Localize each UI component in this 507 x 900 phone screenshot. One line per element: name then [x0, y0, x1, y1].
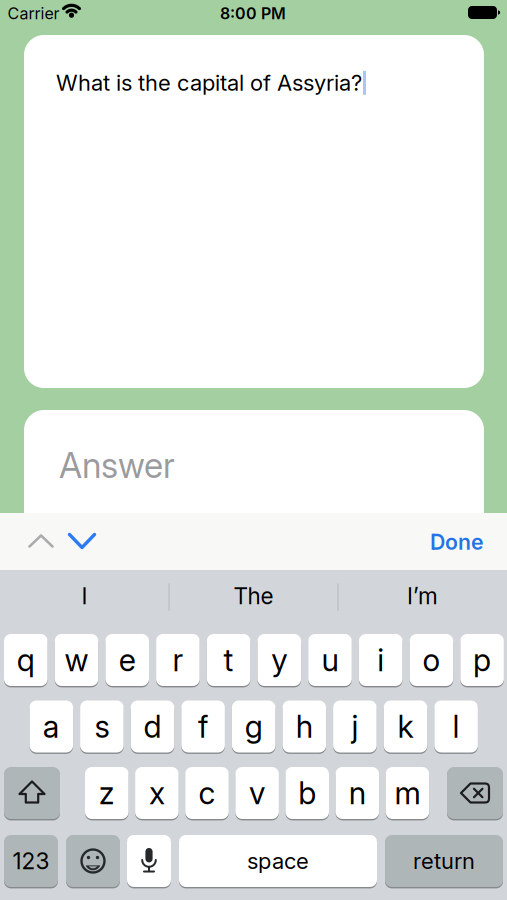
button[interactable]: a — [29, 700, 73, 752]
button[interactable]: Emoji — [66, 835, 120, 887]
button[interactable]: 123 — [4, 835, 58, 887]
button[interactable]: b — [285, 767, 329, 819]
button[interactable]: w — [55, 634, 98, 686]
staticText: Done — [430, 529, 484, 555]
staticText: m — [394, 774, 420, 811]
button[interactable]: d — [131, 700, 174, 752]
button[interactable]: g — [232, 700, 275, 752]
staticText: p — [473, 641, 491, 678]
staticText: i — [377, 641, 384, 678]
staticText: I — [81, 582, 87, 610]
button[interactable]: c — [185, 767, 229, 819]
button[interactable]: h — [282, 700, 326, 752]
staticText: j — [351, 708, 358, 745]
staticText: a — [43, 708, 60, 745]
button[interactable]: t — [207, 634, 250, 686]
staticText: o — [422, 641, 440, 678]
button[interactable]: Delete — [447, 767, 503, 819]
staticText: e — [119, 641, 136, 678]
button[interactable]: v — [235, 767, 279, 819]
staticText: h — [296, 708, 313, 745]
staticText: s — [94, 708, 109, 745]
button[interactable]: The — [170, 574, 337, 618]
staticText: The — [233, 582, 273, 610]
button[interactable]: space — [179, 835, 377, 887]
button[interactable]: Shift — [4, 767, 60, 819]
button[interactable]: e — [105, 634, 149, 686]
staticText: z — [99, 774, 115, 811]
button[interactable]: i — [359, 634, 402, 686]
staticText: l — [453, 708, 460, 745]
staticText: u — [321, 641, 338, 678]
button[interactable]: z — [85, 767, 129, 819]
button[interactable]: Previous field — [21, 521, 61, 561]
button[interactable]: s — [80, 700, 124, 752]
button[interactable]: Next field — [62, 521, 102, 561]
button[interactable]: o — [410, 634, 453, 686]
button[interactable]: Dictate — [127, 835, 171, 887]
button[interactable]: j — [333, 700, 377, 752]
button[interactable]: r — [156, 634, 200, 686]
staticText: c — [198, 774, 215, 811]
staticText: Carrier — [7, 4, 59, 23]
button[interactable]: Answer text field — [24, 410, 484, 534]
staticText: t — [224, 641, 234, 678]
staticText: y — [271, 641, 287, 678]
staticText: d — [143, 708, 161, 745]
staticText: return — [413, 848, 475, 874]
staticText: 8:00 PM — [220, 4, 286, 23]
button[interactable]: Done — [412, 520, 502, 564]
button[interactable]: n — [335, 767, 379, 819]
staticText: f — [198, 708, 208, 745]
staticText: What is the capital of Assyria? — [56, 69, 362, 96]
staticText: g — [245, 708, 263, 745]
button[interactable]: x — [135, 767, 179, 819]
staticText: 123 — [12, 847, 49, 875]
button[interactable]: l — [434, 700, 478, 752]
button[interactable]: y — [257, 634, 301, 686]
staticText: b — [298, 774, 316, 811]
staticText: v — [249, 774, 265, 811]
button[interactable]: k — [384, 700, 427, 752]
button[interactable]: I — [1, 574, 168, 618]
staticText: Answer — [59, 444, 175, 486]
button[interactable]: p — [460, 634, 504, 686]
staticText: I’m — [407, 582, 438, 610]
staticText: space — [247, 848, 309, 874]
staticText: k — [397, 708, 413, 745]
button[interactable]: m — [386, 767, 429, 819]
button[interactable]: f — [181, 700, 225, 752]
button[interactable]: u — [308, 634, 352, 686]
button[interactable]: Question text field — [24, 35, 484, 388]
button[interactable]: return — [385, 835, 503, 887]
staticText: x — [149, 774, 165, 811]
staticText: w — [64, 641, 88, 678]
staticText: n — [349, 774, 366, 811]
button[interactable]: q — [4, 634, 48, 686]
button[interactable]: I’m — [339, 574, 506, 618]
staticText: q — [17, 641, 35, 678]
staticText: r — [172, 641, 183, 678]
